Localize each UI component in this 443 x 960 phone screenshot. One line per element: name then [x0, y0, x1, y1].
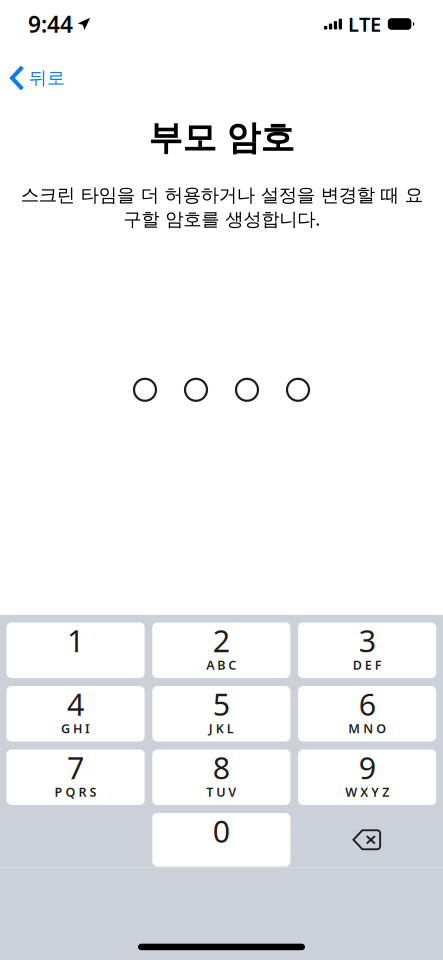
staticText: P Q R S [54, 785, 96, 799]
staticText: 0 [213, 814, 230, 847]
staticText: A B C [206, 658, 236, 672]
staticText: 부모 암호 [148, 117, 294, 159]
staticText: 1 [67, 624, 84, 657]
staticText: 뒤로 [29, 67, 65, 89]
staticText: 8 [213, 751, 230, 784]
staticText: LTE [348, 11, 381, 37]
button[interactable]: 8 [152, 749, 290, 805]
staticText: 4 [67, 687, 84, 720]
staticText: W X Y Z [345, 785, 389, 799]
staticText: 6 [359, 687, 376, 720]
staticText: T U V [206, 785, 236, 799]
staticText: D E F [353, 658, 382, 672]
staticText: J K L [209, 722, 234, 735]
staticText: 7 [67, 751, 84, 784]
button[interactable]: 0 [152, 813, 290, 866]
button[interactable]: Delete [298, 813, 436, 866]
staticText: 2 [213, 624, 230, 657]
button[interactable]: 뒤로 [0, 48, 443, 108]
button[interactable]: 9 [298, 749, 436, 805]
staticText: 3 [359, 624, 376, 657]
button[interactable]: 3 [298, 622, 436, 678]
button[interactable]: 6 [298, 686, 436, 741]
button[interactable]: 5 [152, 686, 290, 741]
staticText: 9 [359, 751, 376, 784]
staticText: M N O [348, 722, 386, 735]
button[interactable]: 7 [6, 749, 145, 805]
staticText: 5 [213, 687, 230, 720]
button[interactable]: 1 [6, 622, 145, 678]
button[interactable]: 2 [152, 622, 290, 678]
button[interactable]: 4 [6, 686, 145, 741]
staticText: 9:44 [28, 9, 73, 39]
staticText: G H I [61, 722, 90, 735]
staticText: 스크린 타임을 더 허용하거나 설정을 변경할 때 요 구할 암호를 생성합니다… [20, 184, 422, 231]
